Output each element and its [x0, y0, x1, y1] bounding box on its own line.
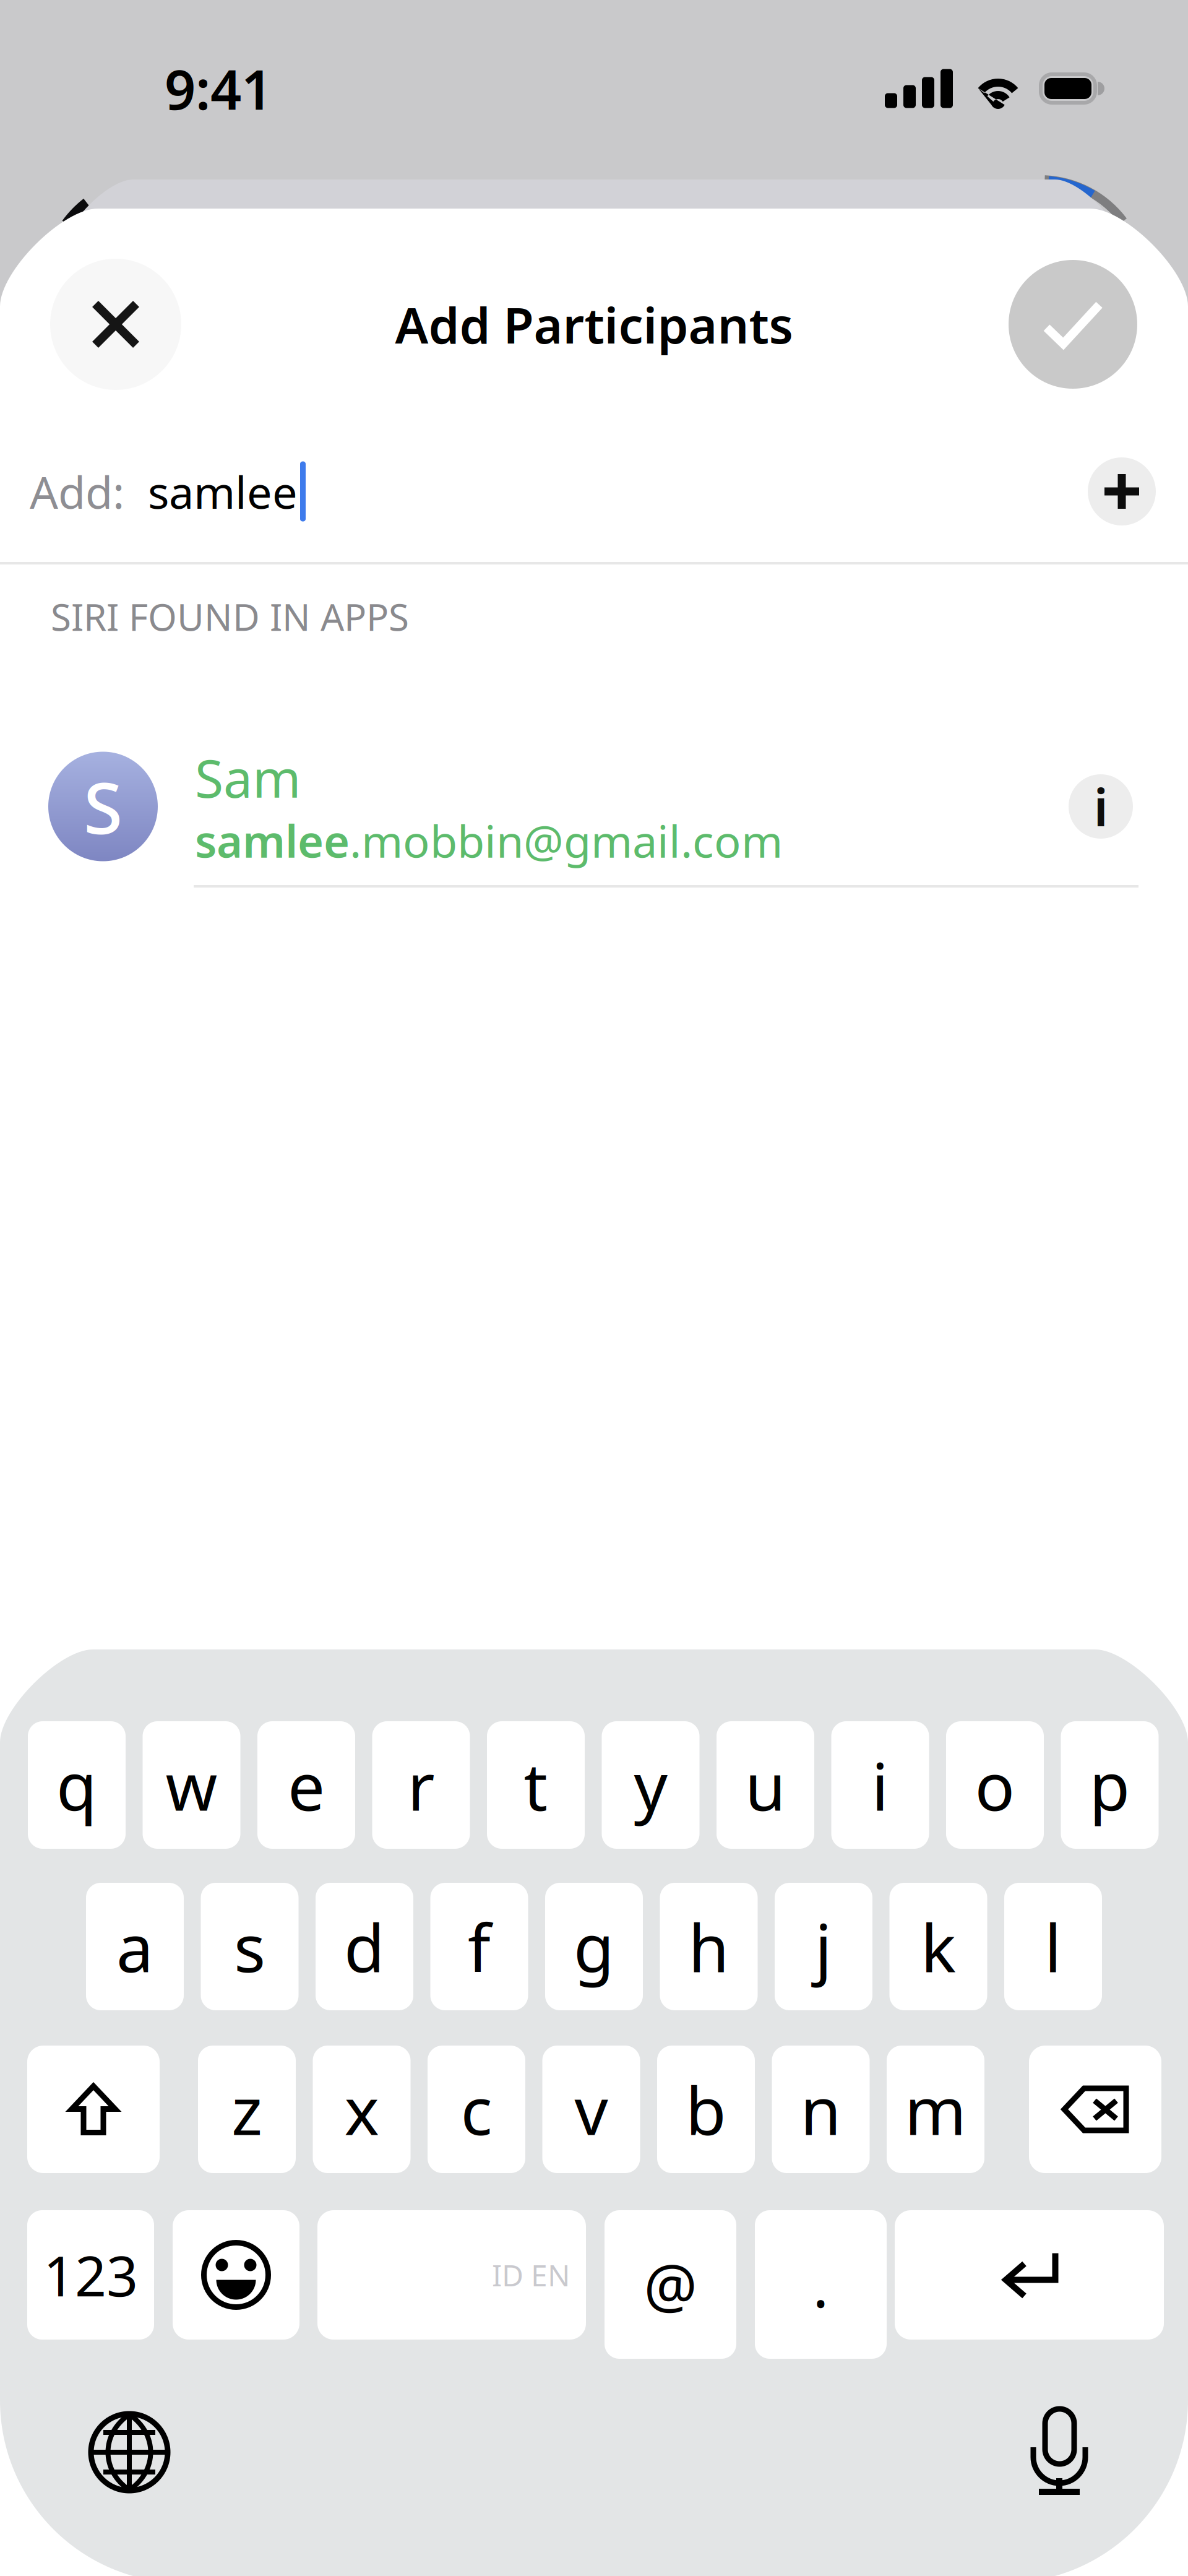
button[interactable]: o: [946, 1721, 1044, 1849]
button[interactable]: q: [28, 1721, 126, 1849]
staticText: samlee: [148, 462, 298, 521]
staticText: 123: [43, 2238, 138, 2312]
button[interactable]: l: [1004, 1883, 1102, 2010]
staticText: w: [166, 1741, 217, 1829]
button[interactable]: b: [657, 2046, 755, 2173]
staticText: i: [1094, 772, 1108, 840]
button[interactable]: S: [0, 743, 1188, 870]
staticText: SIRI FOUND IN APPS: [51, 592, 409, 641]
button[interactable]: v: [542, 2046, 640, 2173]
button[interactable]: j: [775, 1883, 872, 2010]
button[interactable]: t: [487, 1721, 585, 1849]
button[interactable]: Shift: [27, 2046, 160, 2173]
staticText: y: [634, 1741, 667, 1829]
staticText: j: [815, 1903, 832, 1990]
button[interactable]: Add contact: [1088, 457, 1156, 525]
staticText: S: [84, 759, 123, 854]
staticText: .: [813, 2245, 829, 2324]
staticText: 9:41: [165, 52, 272, 125]
button[interactable]: k: [889, 1883, 987, 2010]
button[interactable]: Emoji: [173, 2210, 299, 2340]
staticText: Add:: [30, 462, 124, 521]
staticText: a: [116, 1903, 153, 1990]
button[interactable]: 123: [27, 2210, 154, 2340]
staticText: Sam: [195, 743, 301, 812]
button[interactable]: a: [86, 1883, 184, 2010]
staticText: o: [975, 1741, 1015, 1829]
button[interactable]: s: [201, 1883, 299, 2010]
button[interactable]: Done: [1009, 260, 1137, 389]
button[interactable]: Close: [50, 259, 181, 390]
staticText: l: [1044, 1903, 1062, 1990]
button[interactable]: i: [831, 1721, 929, 1849]
staticText: e: [288, 1741, 325, 1829]
button[interactable]: Space: [317, 2210, 586, 2340]
staticText: @: [644, 2245, 697, 2324]
staticText: samlee.mobbin@gmail.com: [195, 811, 783, 870]
button[interactable]: Return: [895, 2210, 1164, 2340]
staticText: r: [407, 1741, 435, 1829]
button[interactable]: r: [372, 1721, 470, 1849]
staticText: x: [344, 2066, 379, 2153]
button[interactable]: Backspace: [1029, 2046, 1161, 2173]
button[interactable]: h: [660, 1883, 758, 2010]
staticText: f: [468, 1903, 491, 1990]
button[interactable]: g: [545, 1883, 643, 2010]
staticText: g: [574, 1903, 614, 1990]
staticText: b: [686, 2066, 726, 2153]
button[interactable]: @: [605, 2210, 736, 2359]
staticText: v: [575, 2066, 608, 2153]
staticText: h: [688, 1903, 729, 1990]
button[interactable]: .: [755, 2210, 887, 2359]
staticText: c: [461, 2066, 492, 2153]
staticText: Add Participants: [395, 291, 793, 357]
button[interactable]: f: [430, 1883, 528, 2010]
staticText: ID EN: [492, 2255, 570, 2295]
staticText: u: [745, 1741, 786, 1829]
button[interactable]: Switch keyboard: [89, 2412, 170, 2492]
staticText: n: [800, 2066, 841, 2153]
button[interactable]: y: [602, 1721, 699, 1849]
staticText: m: [905, 2066, 966, 2153]
button[interactable]: u: [717, 1721, 814, 1849]
staticText: d: [344, 1903, 385, 1990]
staticText: q: [56, 1741, 97, 1829]
button[interactable]: n: [772, 2046, 870, 2173]
staticText: i: [872, 1741, 889, 1829]
staticText: k: [921, 1903, 956, 1990]
button[interactable]: d: [316, 1883, 413, 2010]
button[interactable]: z: [198, 2046, 296, 2173]
button[interactable]: m: [887, 2046, 984, 2173]
button[interactable]: e: [257, 1721, 355, 1849]
button[interactable]: w: [143, 1721, 240, 1849]
staticText: p: [1089, 1741, 1130, 1829]
staticText: t: [524, 1741, 548, 1829]
button[interactable]: p: [1061, 1721, 1159, 1849]
staticText: z: [231, 2066, 262, 2153]
button[interactable]: Dictate: [1031, 2409, 1088, 2496]
button[interactable]: c: [428, 2046, 525, 2173]
staticText: s: [234, 1903, 265, 1990]
button[interactable]: x: [313, 2046, 411, 2173]
